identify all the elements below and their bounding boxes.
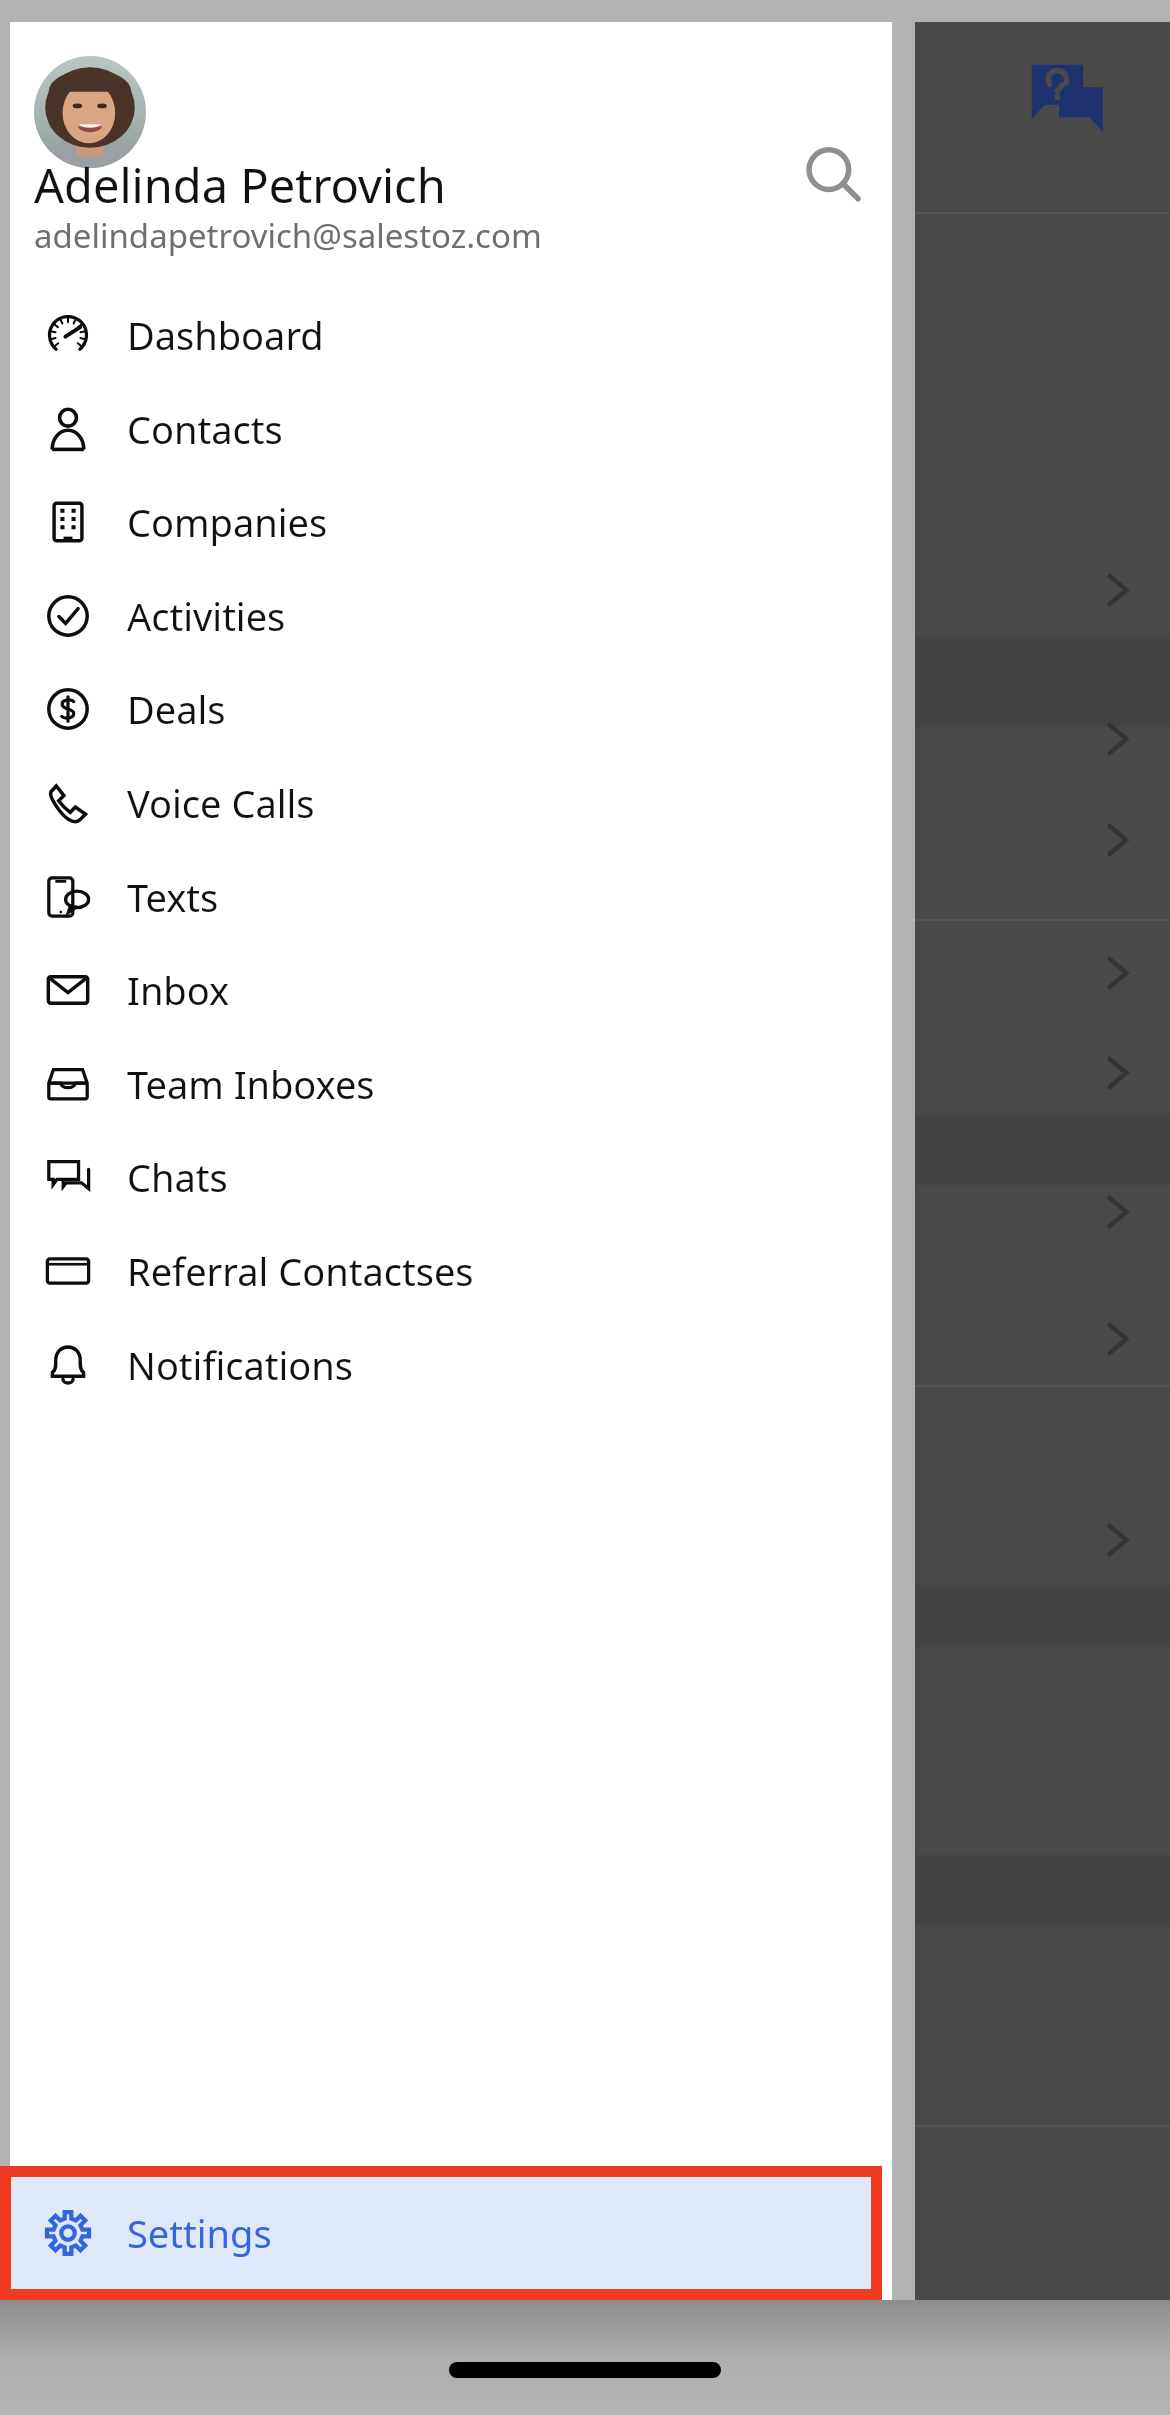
staticText: adelindapetrovich@salestoz.com <box>34 213 542 258</box>
button[interactable]: Search <box>776 118 892 234</box>
staticText: Referral Contactses <box>127 1245 474 1297</box>
button[interactable]: Open <box>1065 544 1170 636</box>
button[interactable]: Inbox <box>10 944 892 1036</box>
button[interactable]: Deals <box>10 663 892 755</box>
button[interactable]: Open <box>1065 794 1170 886</box>
button[interactable]: Open <box>1065 1166 1170 1258</box>
button[interactable]: Open <box>1065 927 1170 1019</box>
button[interactable]: Companies <box>10 476 892 568</box>
button[interactable]: Referral Contactses <box>10 1225 892 1317</box>
staticText: Contacts <box>127 403 283 455</box>
button[interactable]: Contacts <box>10 383 892 475</box>
button[interactable]: Notifications <box>10 1319 892 1411</box>
button[interactable]: Open <box>1065 1293 1170 1385</box>
button[interactable]: Settings <box>0 2166 882 2300</box>
button[interactable]: Help <box>1027 60 1107 140</box>
staticText: Inbox <box>127 964 230 1016</box>
button[interactable]: Voice Calls <box>10 757 892 849</box>
staticText: Activities <box>127 590 286 642</box>
staticText: Chats <box>127 1151 228 1203</box>
button[interactable]: Open <box>1065 693 1170 785</box>
staticText: Adelinda Petrovich <box>34 153 446 217</box>
staticText: Texts <box>127 871 219 923</box>
button[interactable]: Activities <box>10 570 892 662</box>
staticText: Voice Calls <box>127 777 315 829</box>
staticText: Dashboard <box>127 309 324 361</box>
button[interactable]: Chats <box>10 1131 892 1223</box>
staticText: Settings <box>127 2207 272 2259</box>
button[interactable]: Open <box>1065 1027 1170 1119</box>
button[interactable]: Texts <box>10 851 892 943</box>
button[interactable]: Dashboard <box>10 289 892 381</box>
button[interactable]: Open <box>1065 1494 1170 1586</box>
staticText: Notifications <box>127 1339 354 1391</box>
staticText: Companies <box>127 496 328 548</box>
staticText: Deals <box>127 683 226 735</box>
button[interactable]: Team Inboxes <box>10 1038 892 1130</box>
staticText: Team Inboxes <box>127 1058 375 1110</box>
